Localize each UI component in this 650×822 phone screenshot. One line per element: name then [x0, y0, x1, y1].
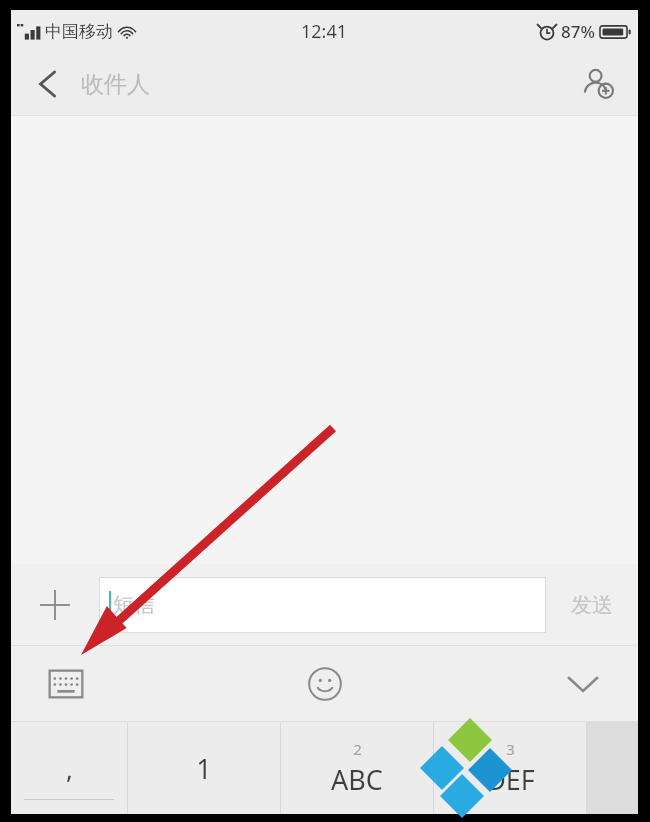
- staticText: 3: [506, 739, 515, 759]
- button[interactable]: Add contact: [560, 52, 638, 116]
- staticText: DEF: [486, 761, 535, 798]
- other: Back: [37, 69, 59, 99]
- staticText: 1: [196, 750, 212, 787]
- button[interactable]: Add attachment: [11, 564, 99, 646]
- button[interactable]: Keyboard: [11, 646, 121, 722]
- button[interactable]: 1: [128, 722, 280, 814]
- other: Keyboard: [48, 669, 84, 699]
- button[interactable]: Emoji: [121, 646, 528, 722]
- staticText: 2: [353, 739, 362, 759]
- staticText: 发送: [571, 592, 613, 618]
- staticText: 中国移动: [45, 21, 113, 42]
- button[interactable]: Hide keyboard: [528, 646, 638, 722]
- other: Hide keyboard: [566, 673, 600, 695]
- other: Emoji: [307, 666, 343, 702]
- staticText: 短信: [113, 592, 155, 618]
- button[interactable]: ,: [11, 722, 127, 814]
- staticText: 收件人: [81, 70, 150, 99]
- other: Add contact: [582, 67, 616, 101]
- button[interactable]: 发送: [546, 564, 638, 646]
- staticText: 87%: [561, 20, 595, 43]
- button[interactable]: 短信: [99, 577, 546, 633]
- button[interactable]: Back: [11, 52, 166, 116]
- staticText: ABC: [331, 761, 383, 798]
- staticText: ,: [66, 751, 73, 786]
- staticText: 12:41: [301, 19, 348, 44]
- button[interactable]: 3: [434, 722, 586, 814]
- button[interactable]: 2: [281, 722, 433, 814]
